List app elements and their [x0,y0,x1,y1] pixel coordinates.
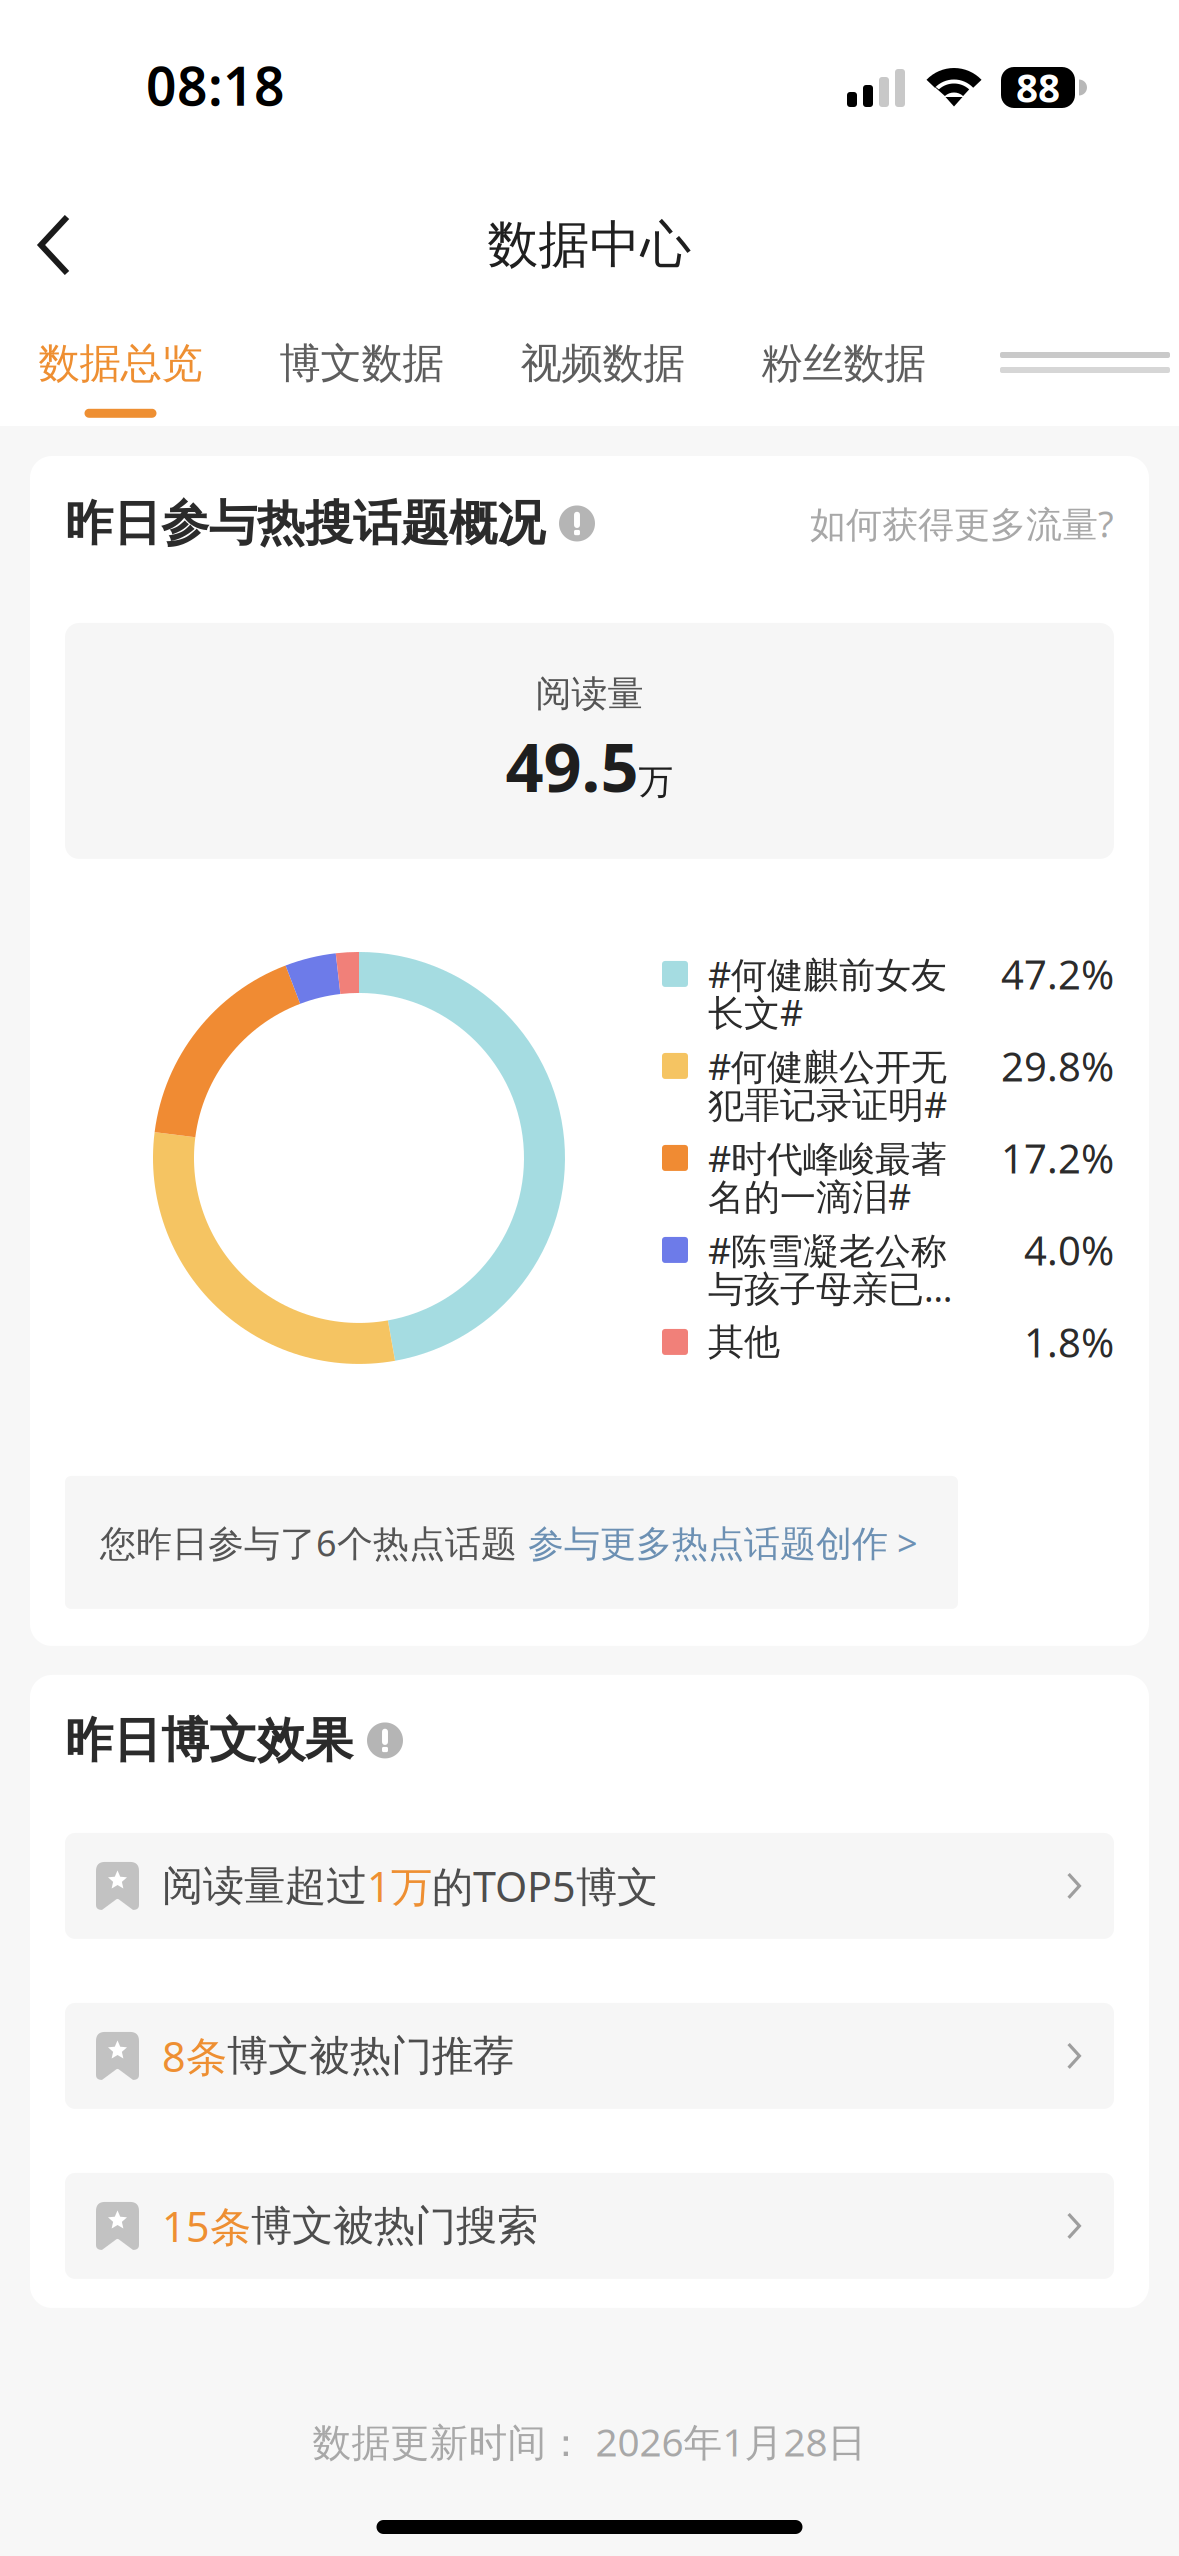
button[interactable]: 8条 [65,2003,1114,2109]
staticText: 数据总览 [38,338,202,389]
staticText: 数据更新时间： 2026年1月28日 [312,2416,866,2467]
staticText: 29.8% [1001,1039,1114,1092]
staticText: 博文被热门搜索 [251,2200,538,2251]
button[interactable]: More tabs [1000,312,1170,373]
staticText: 视频数据 [520,338,684,389]
staticText: 17.2% [1001,1131,1114,1184]
button[interactable]: 如何获得更多流量? [810,500,1114,547]
staticText: 您昨日参与了6个热点话题 [100,1519,528,1566]
staticText: 49.5 [505,722,638,810]
staticText: 的TOP5博文 [432,1858,658,1913]
staticText: 88 [1016,62,1060,113]
staticText: 万 [638,761,673,803]
staticText: 参与更多热点话题创作 > [528,1519,918,1566]
staticText: 长文# [708,988,803,1036]
button[interactable]: 博文数据 [277,312,446,389]
button[interactable]: 视频数据 [518,312,687,389]
staticText: #时代峰峻最著 [708,1134,947,1182]
staticText: 15条 [162,2198,251,2253]
staticText: 8条 [162,2028,227,2083]
staticText: 犯罪记录证明# [708,1080,947,1128]
staticText: 1.8% [1024,1315,1114,1368]
button[interactable]: 粉丝数据 [759,312,928,389]
staticText: #陈雪凝老公称 [708,1226,947,1274]
button[interactable]: Back [0,188,97,302]
staticText: 与孩子母亲已… [708,1264,952,1312]
staticText: 昨日博文效果 [65,1711,353,1770]
button[interactable]: 您昨日参与了6个热点话题 [65,1476,1114,1609]
staticText: 数据中心 [487,214,691,276]
staticText: 阅读量超过 [162,1860,367,1911]
staticText: 粉丝数据 [761,338,925,389]
button[interactable]: 阅读量超过 [65,1833,1114,1939]
staticText: 4.0% [1024,1223,1114,1276]
staticText: 47.2% [1001,947,1114,1000]
staticText: 昨日参与热搜话题概况 [65,494,545,553]
staticText: 阅读量 [535,672,643,716]
staticText: 博文数据 [279,338,443,389]
staticText: 如何获得更多流量? [810,500,1114,547]
staticText: 1万 [367,1858,432,1913]
button[interactable]: 15条 [65,2173,1114,2279]
staticText: #何健麒公开无 [708,1042,947,1090]
staticText: 08:18 [146,50,285,120]
staticText: 其他 [708,1320,780,1364]
staticText: 名的一滴泪# [708,1172,911,1220]
staticText: 博文被热门推荐 [227,2030,514,2081]
button[interactable]: 数据总览 [36,312,205,418]
staticText: #何健麒前女友 [708,950,947,998]
